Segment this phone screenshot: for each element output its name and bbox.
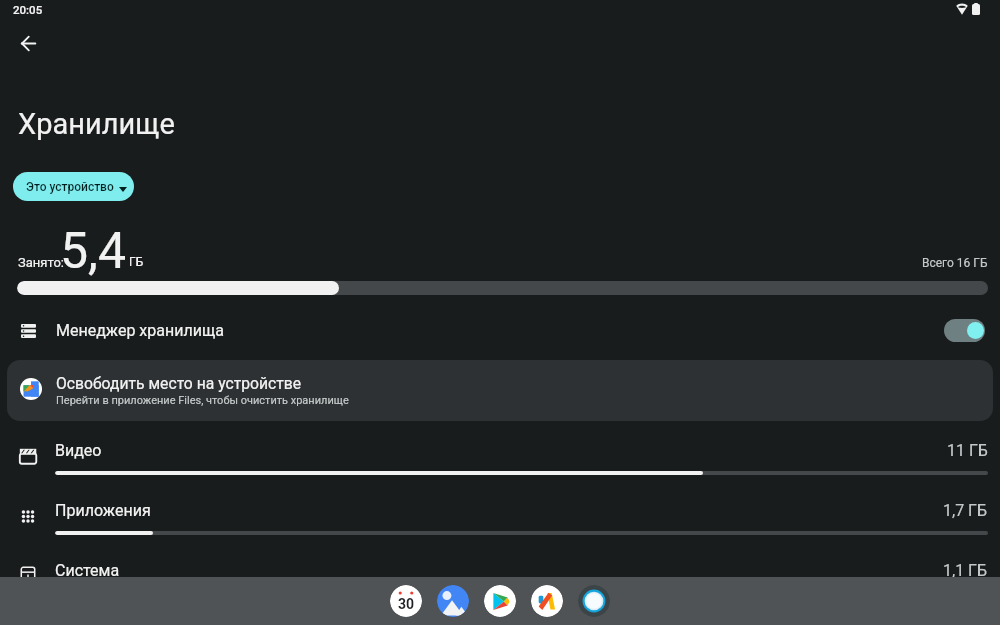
button[interactable]: Назад [8,23,48,63]
staticText: Приложения [55,501,151,520]
button[interactable]: Видео [0,426,1000,486]
staticText: Освободить место на устройстве [56,374,302,392]
staticText: 11 ГБ [947,441,988,460]
button[interactable]: Google Фото [437,585,469,617]
button[interactable]: Система [0,546,1000,606]
staticText: 20:05 [13,3,43,16]
button[interactable]: Приложения [0,486,1000,546]
staticText: 30 [398,596,415,612]
button[interactable]: Менеджер хранилища включён [944,319,985,342]
button[interactable]: Освободить место на устройстве [7,360,993,421]
staticText: Перейти в приложение Files, чтобы очисти… [56,394,349,407]
button[interactable]: Менеджер хранилища [0,308,1000,353]
staticText: Занято: [18,255,64,270]
staticText: 5,4 [60,222,127,281]
staticText: Видео [55,441,102,460]
staticText: Система [55,561,120,580]
button[interactable]: Это устройство [13,172,134,201]
staticText: Всего 16 ГБ [922,256,988,270]
staticText: 1,1 ГБ [943,561,988,580]
button[interactable]: Google Analytics [531,585,563,617]
staticText: Это устройство [26,180,114,194]
staticText: ГБ [129,255,144,269]
button[interactable]: Ассистент [578,585,610,617]
staticText: 1,7 ГБ [943,501,988,520]
button[interactable]: Календарь [390,585,422,617]
staticText: Хранилище [18,107,175,141]
staticText: Менеджер хранилища [56,321,224,340]
button[interactable]: Google Play [484,585,516,617]
